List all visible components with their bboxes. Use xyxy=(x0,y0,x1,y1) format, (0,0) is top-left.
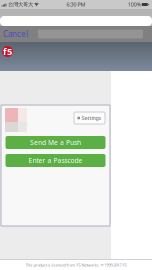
staticText: 台灣大哥大 xyxy=(8,1,33,8)
button[interactable]: Cancel xyxy=(1,26,30,42)
staticText: This product is licensed from F5 Network… xyxy=(25,262,126,268)
staticText: Enter a Passcode xyxy=(28,156,82,165)
staticText: Send Me a Push xyxy=(30,138,81,147)
button[interactable]: Send Me a Push xyxy=(5,136,105,149)
staticText: f5 xyxy=(3,45,12,58)
button[interactable]: Settings xyxy=(74,112,105,124)
button[interactable]: Enter a Passcode xyxy=(5,154,105,167)
staticText: 100% xyxy=(128,1,141,8)
staticText: 6:30 PM xyxy=(66,1,85,8)
staticText: Cancel xyxy=(3,29,28,39)
staticText: Settings xyxy=(81,114,101,122)
